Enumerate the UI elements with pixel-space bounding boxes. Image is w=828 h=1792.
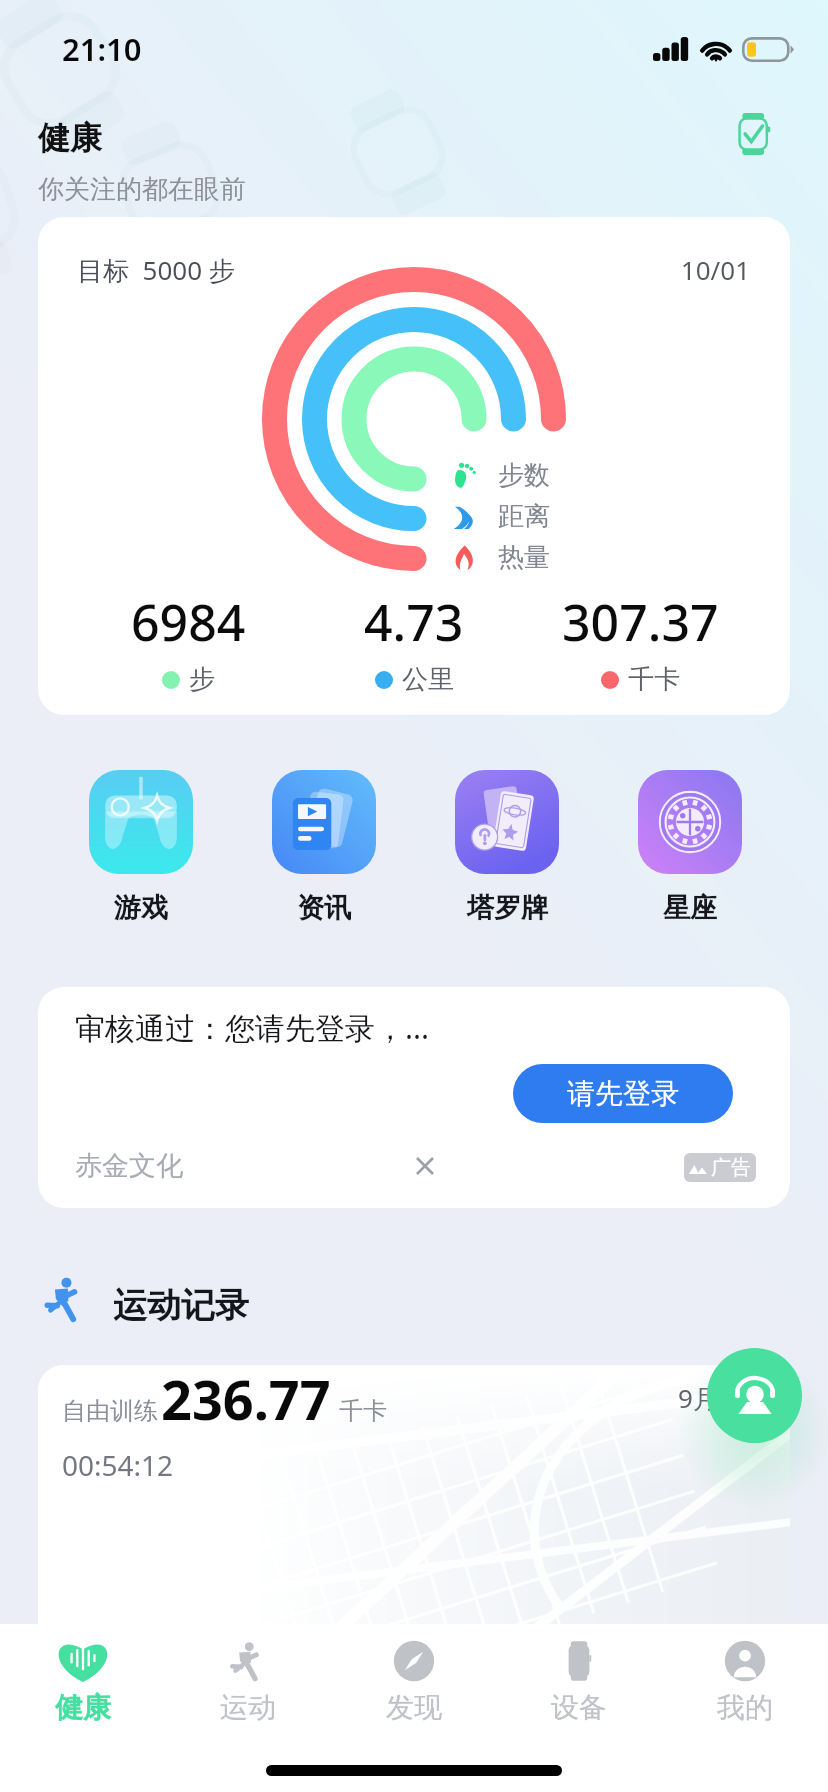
staticText: 资讯 [297, 891, 351, 925]
staticText: 步 [189, 663, 215, 696]
staticText: 塔罗牌 [467, 891, 548, 925]
staticText: 目标 5000 步 [77, 252, 235, 288]
staticText: 6984 [131, 588, 246, 656]
staticText: 21:10 [62, 28, 142, 70]
staticText: 公里 [402, 663, 454, 696]
staticText: 00:54:12 [62, 1446, 174, 1484]
staticText: 热量 [498, 541, 550, 574]
staticText: 307.37 [562, 588, 719, 656]
button[interactable]: 星座 [638, 770, 742, 925]
button[interactable]: 请先登录 [513, 1064, 733, 1123]
staticText: 236.77 [161, 1365, 331, 1436]
staticText: 游戏 [114, 891, 168, 925]
staticText: 自由训练 [62, 1396, 158, 1426]
button[interactable]: My watch [724, 105, 782, 163]
staticText: 距离 [498, 500, 550, 533]
staticText: 审核通过：您请先登录，... [75, 1007, 430, 1048]
staticText: 千卡 [339, 1396, 387, 1426]
staticText: 我的 [717, 1690, 773, 1725]
staticText: 健康 [55, 1690, 111, 1725]
staticText: 步数 [498, 459, 550, 492]
button[interactable]: Customer service [707, 1348, 802, 1443]
staticText: 4.73 [364, 588, 464, 656]
staticText: 健康 [38, 118, 102, 158]
staticText: 星座 [663, 891, 717, 925]
button[interactable]: 游戏 [89, 770, 193, 925]
button[interactable]: 自由训练 [38, 1365, 790, 1624]
staticText: 设备 [551, 1690, 607, 1725]
staticText: 赤金文化 [75, 1149, 183, 1183]
button[interactable]: 资讯 [272, 770, 376, 925]
button[interactable]: 发现 [331, 1624, 497, 1742]
staticText: 千卡 [628, 663, 680, 696]
staticText: 请先登录 [567, 1076, 679, 1111]
button[interactable]: 设备 [496, 1624, 662, 1742]
staticText: 运动记录 [113, 1284, 249, 1327]
staticText: 9月 [678, 1380, 719, 1416]
staticText: 发现 [386, 1690, 442, 1725]
button[interactable]: 我的 [662, 1624, 828, 1742]
button[interactable]: Close ad [406, 1147, 444, 1185]
staticText: 运动 [220, 1690, 276, 1725]
button[interactable]: 审核通过：您请先登录，... [38, 987, 790, 1208]
staticText: 10/01 [600, 252, 750, 287]
staticText: 你关注的都在眼前 [38, 173, 246, 206]
staticText: 广告 [711, 1155, 751, 1180]
button[interactable]: 运动 [165, 1624, 331, 1742]
button[interactable]: 塔罗牌 [455, 770, 559, 925]
button[interactable]: 健康 [0, 1624, 166, 1742]
